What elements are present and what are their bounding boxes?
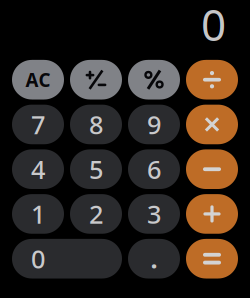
staticText: 0 — [31, 242, 45, 275]
button[interactable]: . — [128, 239, 180, 278]
button[interactable]: Minus — [186, 149, 238, 189]
staticText: . — [150, 242, 157, 275]
staticText: 3 — [147, 197, 161, 231]
staticText: 4 — [31, 152, 45, 186]
button[interactable]: 0 — [12, 239, 122, 278]
staticText: 2 — [89, 197, 103, 231]
staticText: 6 — [147, 152, 161, 186]
staticText: 7 — [31, 108, 45, 141]
button[interactable]: Plus minus — [70, 60, 122, 99]
button[interactable]: Multiply — [186, 105, 238, 144]
button[interactable]: 7 — [12, 105, 64, 144]
staticText: 0 — [201, 0, 226, 53]
staticText: 9 — [147, 108, 161, 141]
button[interactable]: 4 — [12, 149, 64, 189]
button[interactable]: 8 — [70, 105, 122, 144]
button[interactable]: 2 — [70, 194, 122, 234]
button[interactable]: 9 — [128, 105, 180, 144]
staticText: 5 — [89, 152, 103, 186]
button[interactable]: 6 — [128, 149, 180, 189]
button[interactable]: Divide — [186, 60, 238, 99]
button[interactable]: Equals — [186, 239, 238, 278]
button[interactable]: 3 — [128, 194, 180, 234]
button[interactable]: 1 — [12, 194, 64, 234]
button[interactable]: AC — [12, 60, 64, 99]
button[interactable]: Plus — [186, 194, 238, 234]
button[interactable]: 5 — [70, 149, 122, 189]
button[interactable]: Percent — [128, 60, 180, 99]
staticText: 1 — [31, 197, 45, 231]
staticText: AC — [25, 67, 50, 92]
staticText: 8 — [89, 108, 103, 141]
